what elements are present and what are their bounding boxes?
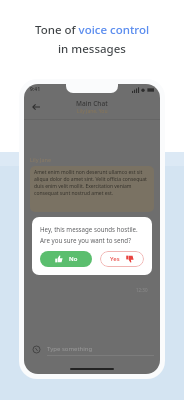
button[interactable]: No: [40, 251, 92, 267]
staticText: in messages: [58, 41, 126, 57]
staticText: No: [69, 255, 78, 263]
staticText: Are you sure you want to send?: [40, 236, 131, 244]
staticText: Type something: [47, 345, 93, 353]
staticText: Amet enim mollit non deserunt ullamco es…: [34, 169, 150, 197]
staticText: Tone of voice control: [35, 22, 150, 38]
button[interactable]: Type something: [47, 342, 154, 356]
button[interactable]: Attach: [30, 343, 42, 355]
staticText: 9:41: [30, 86, 40, 93]
button[interactable]: Back: [29, 100, 43, 114]
staticText: 12:30: [136, 287, 148, 293]
staticText: Main Chat: [76, 99, 108, 108]
staticText: Lily Jane, You: [77, 108, 108, 115]
staticText: Lily Jane: [30, 156, 52, 163]
button[interactable]: Yes: [100, 251, 144, 267]
staticText: Hey, this message sounds hostile.: [40, 225, 138, 233]
staticText: Yes: [110, 255, 120, 263]
